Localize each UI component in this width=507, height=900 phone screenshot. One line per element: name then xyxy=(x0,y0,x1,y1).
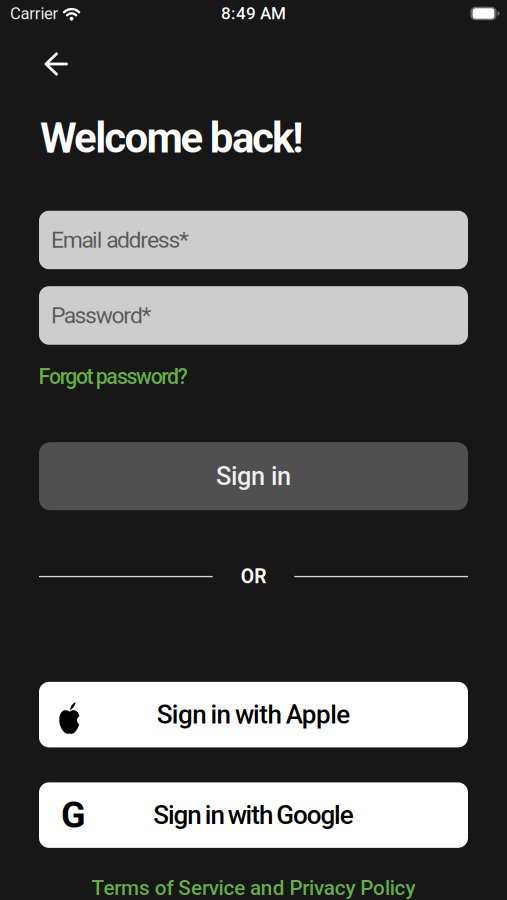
staticText: 8:49 AM xyxy=(221,3,286,23)
button[interactable]: Sign in with Apple xyxy=(39,682,468,747)
button[interactable]: Password* xyxy=(39,286,468,345)
staticText: Carrier xyxy=(10,4,59,23)
button[interactable]: Terms of Service and Privacy Policy xyxy=(92,876,415,900)
staticText: Sign in with Apple xyxy=(157,699,350,730)
staticText: G xyxy=(61,794,86,836)
staticText: Welcome back! xyxy=(40,113,303,163)
staticText: Password* xyxy=(51,302,152,329)
button[interactable]: Email address* xyxy=(39,211,468,269)
staticText: Forgot password? xyxy=(38,364,187,389)
staticText: Sign in with Google xyxy=(153,800,354,830)
button[interactable]: G xyxy=(39,782,468,848)
staticText: Sign in xyxy=(216,461,291,491)
staticText: Terms of Service and Privacy Policy xyxy=(92,876,415,900)
staticText: Email address* xyxy=(51,226,189,253)
staticText: OR xyxy=(241,565,266,588)
button[interactable]: Back xyxy=(41,49,71,79)
button[interactable]: Forgot password? xyxy=(38,364,187,389)
button[interactable]: Sign in xyxy=(39,442,468,510)
